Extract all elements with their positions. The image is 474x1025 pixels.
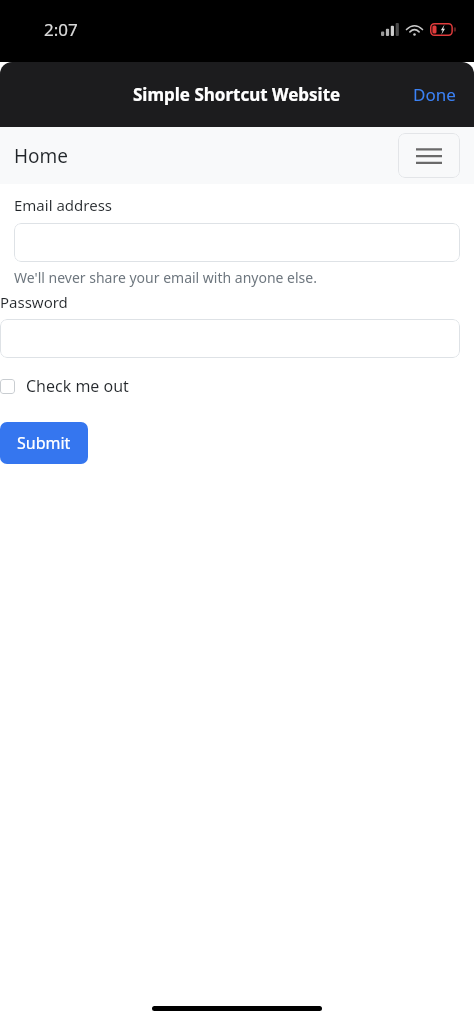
staticText: Submit: [17, 432, 71, 454]
staticText: Home: [14, 143, 69, 169]
staticText: We'll never share your email with anyone…: [14, 268, 317, 287]
button[interactable]: [0, 319, 460, 358]
button[interactable]: Done: [395, 73, 474, 116]
staticText: 2:07: [44, 18, 78, 41]
staticText: Password: [0, 292, 68, 312]
button[interactable]: [14, 223, 460, 262]
staticText: Email address: [14, 195, 113, 215]
button[interactable]: Submit: [0, 422, 88, 464]
staticText: Simple Shortcut Website: [133, 83, 341, 106]
staticText: Check me out: [26, 375, 129, 397]
button[interactable]: Toggle navigation menu: [398, 133, 460, 178]
staticText: Done: [413, 83, 456, 106]
button[interactable]: Check me out: [0, 375, 139, 397]
